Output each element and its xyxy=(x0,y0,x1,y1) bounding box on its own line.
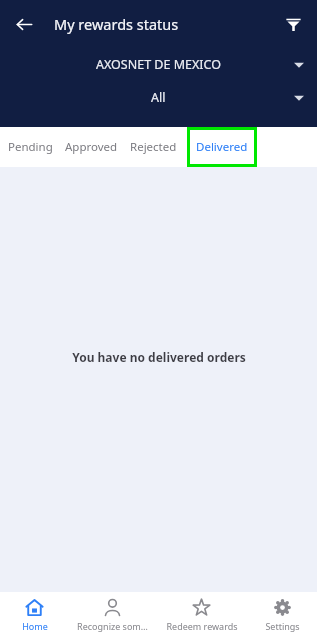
button[interactable]: Approved xyxy=(65,127,118,167)
staticText: Home xyxy=(22,620,48,632)
button[interactable]: Recognize som… xyxy=(69,592,156,638)
staticText: Settings xyxy=(265,620,300,632)
staticText: Approved xyxy=(65,139,118,155)
button[interactable]: Settings xyxy=(247,592,317,638)
button[interactable]: All xyxy=(0,81,317,114)
staticText: All xyxy=(151,89,166,106)
staticText: Rejected xyxy=(130,139,177,155)
staticText: You have no delivered orders xyxy=(72,349,246,365)
button[interactable]: AXOSNET DE MEXICO xyxy=(0,47,317,81)
button[interactable]: Pending xyxy=(8,127,53,167)
staticText: Redeem rewards xyxy=(166,620,238,632)
button[interactable]: Delivered xyxy=(187,127,257,167)
staticText: My rewards status xyxy=(54,14,179,34)
staticText: AXOSNET DE MEXICO xyxy=(96,56,221,73)
button[interactable]: Home xyxy=(0,592,69,638)
staticText: Delivered xyxy=(196,139,248,155)
staticText: Recognize som… xyxy=(77,620,148,632)
button[interactable]: Back xyxy=(6,6,42,42)
button[interactable]: Redeem rewards xyxy=(156,592,247,638)
button[interactable]: Rejected xyxy=(130,127,177,167)
button[interactable]: Filter xyxy=(275,6,311,42)
staticText: Pending xyxy=(8,139,53,155)
